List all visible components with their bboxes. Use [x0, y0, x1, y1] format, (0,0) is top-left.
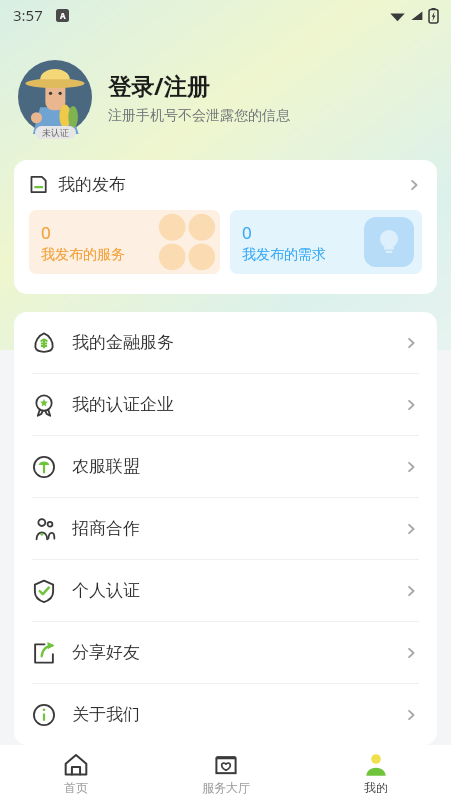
staticText: 未认证: [42, 127, 69, 138]
button[interactable]: 我的认证企业: [14, 374, 437, 435]
staticText: 我的发布: [58, 174, 126, 195]
staticText: 我发布的服务: [41, 246, 125, 264]
staticText: 登录/注册: [108, 70, 210, 101]
button[interactable]: 首页: [0, 745, 151, 803]
staticText: 首页: [64, 780, 88, 795]
staticText: 关于我们: [72, 704, 140, 725]
staticText: 个人认证: [72, 580, 140, 601]
staticText: 我的: [364, 780, 388, 795]
button[interactable]: 0: [29, 210, 220, 274]
button[interactable]: 我的发布: [29, 174, 422, 195]
staticText: 我的认证企业: [72, 394, 174, 415]
staticText: 我的金融服务: [72, 332, 174, 353]
staticText: 我发布的需求: [242, 246, 326, 264]
staticText: 0: [41, 221, 51, 244]
button[interactable]: 关于我们: [14, 684, 437, 745]
staticText: A: [60, 10, 66, 21]
staticText: 0: [242, 221, 252, 244]
button[interactable]: 未认证: [18, 60, 433, 134]
staticText: 3:57: [13, 5, 43, 25]
button[interactable]: 个人认证: [14, 560, 437, 621]
staticText: 农服联盟: [72, 456, 140, 477]
button[interactable]: 我的: [301, 745, 451, 803]
staticText: 分享好友: [72, 642, 140, 663]
button[interactable]: 分享好友: [14, 622, 437, 683]
button[interactable]: 招商合作: [14, 498, 437, 559]
button[interactable]: 服务大厅: [151, 745, 301, 803]
staticText: 注册手机号不会泄露您的信息: [108, 107, 290, 125]
button[interactable]: 0: [230, 210, 422, 274]
button[interactable]: 我的金融服务: [14, 312, 437, 373]
staticText: 服务大厅: [202, 780, 250, 795]
staticText: 招商合作: [72, 518, 140, 539]
button[interactable]: 农服联盟: [14, 436, 437, 497]
